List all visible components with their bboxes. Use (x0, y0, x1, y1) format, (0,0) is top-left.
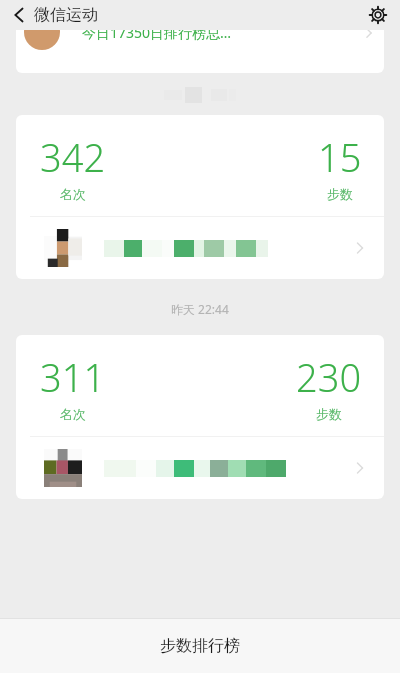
staticText: 步数 (316, 406, 342, 422)
button[interactable]: Settings (364, 1, 392, 29)
button[interactable]: 步数排行榜 (0, 619, 400, 673)
staticText: 15 (318, 131, 362, 183)
staticText: 昨天 22:44 (171, 301, 229, 317)
staticText: 步数 (327, 186, 353, 202)
staticText: 今日17350日排行榜总… (82, 30, 232, 42)
other: Open ranking (350, 238, 370, 258)
button[interactable]: Back (4, 0, 34, 30)
staticText: 微信运动 (34, 5, 98, 25)
staticText: 311 (40, 351, 106, 403)
staticText: 230 (296, 351, 362, 403)
other: Open ranking (350, 458, 370, 478)
staticText: 名次 (60, 406, 86, 422)
staticText: 名次 (60, 186, 86, 202)
button[interactable]: 342 (16, 115, 384, 279)
button[interactable]: 311 (16, 335, 384, 499)
staticText: 342 (40, 131, 106, 183)
button[interactable]: 今日17350日排行榜总… (16, 30, 384, 73)
staticText: 步数排行榜 (160, 636, 240, 656)
